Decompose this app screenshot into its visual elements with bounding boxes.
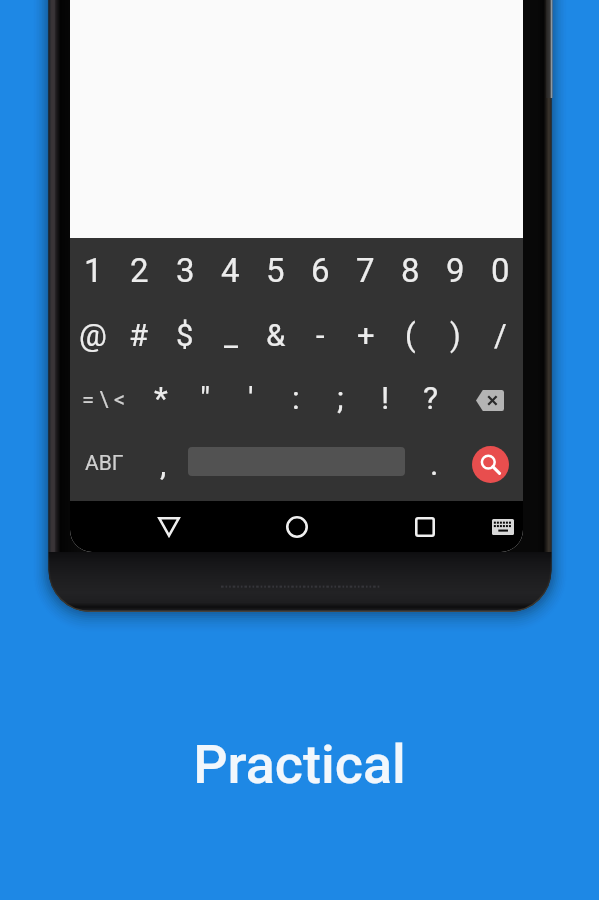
button[interactable]: Home xyxy=(273,501,320,552)
button[interactable]: ? xyxy=(408,368,453,428)
button[interactable]: - xyxy=(298,302,343,368)
button[interactable]: 2 xyxy=(116,238,162,302)
button[interactable]: / xyxy=(478,302,523,368)
staticText: 2 xyxy=(130,251,149,290)
staticText: Practical xyxy=(193,733,406,796)
button[interactable]: 4 xyxy=(208,238,253,302)
button[interactable]: 9 xyxy=(433,238,478,302)
staticText: АВГ xyxy=(85,451,124,476)
button[interactable]: ) xyxy=(433,302,478,368)
staticText: 5 xyxy=(266,251,285,290)
button[interactable]: Search xyxy=(457,428,523,499)
button[interactable]: $ xyxy=(162,302,208,368)
staticText: * xyxy=(154,379,168,417)
button[interactable]: 8 xyxy=(388,238,433,302)
staticText: & xyxy=(266,317,286,353)
staticText: $ xyxy=(176,317,194,353)
button[interactable]: ; xyxy=(318,368,363,428)
staticText: . xyxy=(430,445,439,483)
button[interactable]: # xyxy=(116,302,162,368)
staticText: : xyxy=(292,379,300,417)
staticText: ; xyxy=(337,379,344,417)
button[interactable]: 0 xyxy=(478,238,523,302)
staticText: - xyxy=(316,317,325,353)
staticText: _ xyxy=(224,317,238,353)
button[interactable]: . xyxy=(414,428,454,499)
button[interactable]: _ xyxy=(208,302,253,368)
button[interactable]: & xyxy=(253,302,298,368)
button[interactable]: Space xyxy=(183,428,410,499)
staticText: ! xyxy=(381,379,390,417)
staticText: " xyxy=(200,379,211,417)
staticText: 6 xyxy=(311,251,330,290)
button[interactable]: = \ < xyxy=(70,368,138,428)
staticText: , xyxy=(160,445,167,483)
button[interactable]: 7 xyxy=(343,238,388,302)
staticText: 3 xyxy=(176,251,195,290)
staticText: = \ < xyxy=(82,387,126,413)
staticText: ' xyxy=(248,379,254,417)
staticText: 7 xyxy=(356,251,375,290)
staticText: ? xyxy=(423,379,439,417)
button[interactable]: 1 xyxy=(70,238,116,302)
button[interactable]: АВГ xyxy=(75,428,133,499)
button[interactable]: ! xyxy=(363,368,408,428)
button[interactable]: ' xyxy=(228,368,273,428)
button[interactable]: : xyxy=(273,368,318,428)
button[interactable]: @ xyxy=(70,302,116,368)
staticText: 0 xyxy=(491,251,510,290)
button[interactable]: + xyxy=(343,302,388,368)
button[interactable]: " xyxy=(183,368,228,428)
button[interactable]: , xyxy=(141,428,185,499)
staticText: ) xyxy=(450,317,461,353)
button[interactable]: Backspace xyxy=(453,368,522,428)
staticText: 9 xyxy=(446,251,465,290)
staticText: 4 xyxy=(221,251,240,290)
button[interactable]: ( xyxy=(388,302,433,368)
button[interactable]: 5 xyxy=(253,238,298,302)
staticText: @ xyxy=(79,317,107,353)
staticText: # xyxy=(129,317,149,353)
staticText: ( xyxy=(405,317,416,353)
button[interactable]: 3 xyxy=(162,238,208,302)
staticText: + xyxy=(357,317,375,353)
button[interactable]: Switch keyboard xyxy=(479,501,523,552)
button[interactable]: * xyxy=(138,368,183,428)
button[interactable]: 6 xyxy=(298,238,343,302)
button[interactable]: Recent apps xyxy=(401,501,448,552)
staticText: / xyxy=(494,317,507,353)
button[interactable]: Back xyxy=(145,501,192,552)
staticText: 1 xyxy=(84,251,103,290)
staticText: 8 xyxy=(401,251,420,290)
